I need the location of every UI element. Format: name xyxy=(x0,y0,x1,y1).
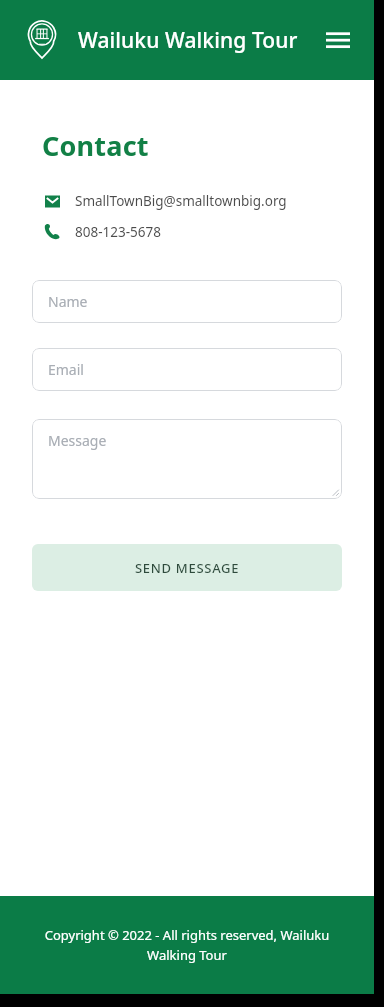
staticText: Name xyxy=(48,292,88,311)
staticText: Copyright © 2022 - All rights reserved, … xyxy=(34,926,340,964)
other: Phone xyxy=(42,222,62,242)
button[interactable]: Email xyxy=(42,191,287,211)
staticText: Contact xyxy=(42,127,149,164)
staticText: SmallTownBig@smalltownbig.org xyxy=(75,192,287,210)
staticText: 808-123-5678 xyxy=(75,223,161,241)
button[interactable]: Email xyxy=(32,348,342,391)
staticText: Email xyxy=(48,360,84,379)
button[interactable]: Phone xyxy=(42,222,161,242)
other: Email xyxy=(42,191,62,211)
button[interactable]: Message xyxy=(32,419,342,499)
button[interactable]: Wailuku Walking Tour logo xyxy=(22,20,62,60)
button[interactable]: Open navigation menu xyxy=(322,24,354,56)
staticText: Wailuku Walking Tour xyxy=(78,26,298,55)
button[interactable]: SEND MESSAGE xyxy=(32,544,342,591)
staticText: Message xyxy=(48,431,107,450)
staticText: SEND MESSAGE xyxy=(135,559,240,577)
button[interactable]: Name xyxy=(32,280,342,323)
